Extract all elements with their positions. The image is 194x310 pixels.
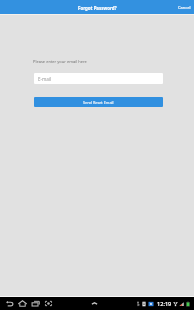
button[interactable]: Send Reset Email: [34, 97, 163, 107]
button[interactable]: Home: [16, 298, 28, 309]
button[interactable]: Back: [3, 298, 15, 309]
staticText: 12:19: [157, 300, 172, 308]
button[interactable]: Show notifications: [89, 298, 100, 309]
staticText: E-mail: [38, 76, 52, 82]
staticText: Cancel: [178, 5, 191, 10]
staticText: Send Reset Email: [83, 100, 114, 105]
staticText: Forgot Password?: [78, 5, 117, 11]
button[interactable]: Cancel: [175, 5, 194, 10]
button[interactable]: Recent apps: [29, 298, 41, 309]
button[interactable]: Screenshot: [42, 298, 54, 309]
staticText: Please enter your email here: [33, 59, 87, 64]
button[interactable]: E-mail: [34, 73, 163, 84]
